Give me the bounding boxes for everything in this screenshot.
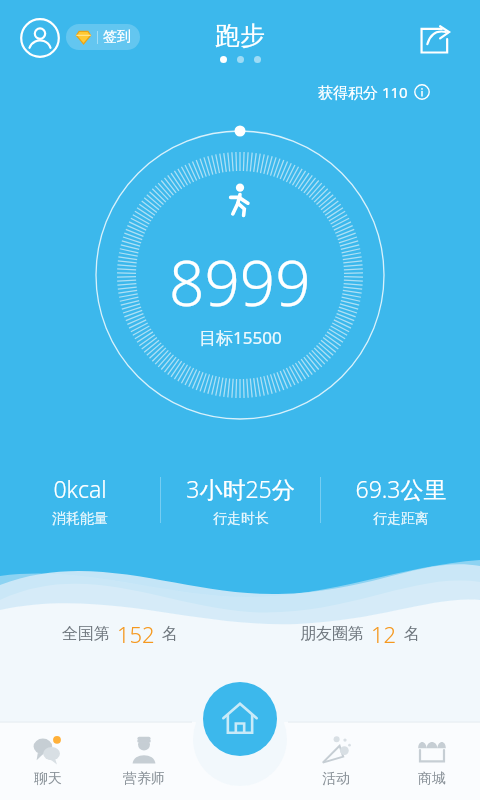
button[interactable]: 3小时25分 (161, 469, 320, 532)
staticText: 名 (162, 624, 178, 644)
staticText: 8999 (169, 240, 311, 324)
button[interactable]: 聊天 (0, 722, 96, 800)
staticText: 跑步 (215, 20, 265, 51)
staticText: 3小时25分 (186, 473, 295, 504)
staticText: 朋友圈第 (300, 624, 364, 644)
staticText: 聊天 (34, 770, 62, 788)
staticText: 行走时长 (213, 510, 269, 528)
staticText: 152 (117, 619, 155, 649)
button[interactable]: 营养师 (96, 722, 192, 800)
staticText: 获得积分 110 (318, 82, 408, 102)
staticText: 消耗能量 (52, 510, 108, 528)
button[interactable]: 商城 (384, 722, 480, 800)
staticText: 名 (404, 624, 420, 644)
button[interactable]: 朋友圈第 (240, 619, 480, 649)
staticText: 69.3公里 (355, 473, 447, 504)
button[interactable]: 活动 (288, 722, 384, 800)
staticText: 行走距离 (373, 510, 429, 528)
button[interactable]: 签到 (66, 24, 140, 50)
button[interactable]: Share (414, 20, 456, 62)
staticText: 营养师 (123, 770, 165, 788)
staticText: 12 (371, 619, 397, 649)
button[interactable]: 69.3公里 (321, 469, 480, 532)
staticText: 目标15500 (199, 326, 282, 349)
button[interactable]: Home (203, 682, 277, 756)
staticText: 0kcal (53, 473, 107, 504)
staticText: 活动 (322, 770, 350, 788)
button[interactable]: 全国第 (0, 619, 240, 649)
staticText: 商城 (418, 770, 446, 788)
staticText: 全国第 (62, 624, 110, 644)
button[interactable]: 获得积分 110 (318, 82, 430, 102)
button[interactable]: Profile (20, 18, 60, 58)
button[interactable]: 0kcal (0, 469, 160, 532)
staticText: 签到 (103, 28, 131, 46)
